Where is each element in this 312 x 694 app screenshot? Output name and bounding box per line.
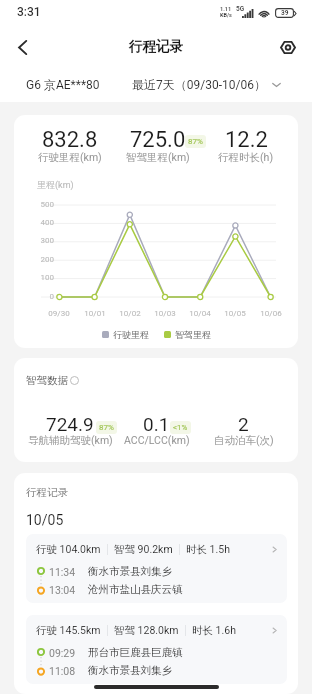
staticText: 10/05 bbox=[220, 309, 250, 318]
button[interactable]: 行驶 104.0km bbox=[26, 534, 287, 603]
button[interactable]: 行驶 145.5km bbox=[26, 615, 287, 684]
staticText: ACC/LCC(km) bbox=[124, 434, 190, 446]
staticText: 12.2 bbox=[225, 127, 268, 153]
staticText: 沧州市盐山县庆云镇 bbox=[88, 583, 183, 596]
staticText: 500 bbox=[34, 200, 54, 209]
staticText: 0.1 bbox=[143, 413, 170, 435]
button[interactable]: G6 京AE***80 bbox=[18, 71, 108, 98]
staticText: 自动泊车(次) bbox=[214, 434, 274, 447]
staticText: 87% bbox=[188, 137, 203, 146]
staticText: 智驾里程(km) bbox=[126, 151, 190, 164]
staticText: 时长 1.6h bbox=[192, 624, 236, 637]
staticText: 邢台市巨鹿县巨鹿镇 bbox=[88, 646, 183, 659]
staticText: 400 bbox=[34, 218, 54, 227]
staticText: 3:31 bbox=[17, 5, 41, 19]
staticText: 832.8 bbox=[42, 127, 98, 153]
staticText: 里程(km) bbox=[37, 179, 74, 190]
button[interactable]: Back bbox=[2, 27, 42, 67]
staticText: 1.11 bbox=[220, 6, 232, 12]
staticText: 行程记录 bbox=[129, 38, 183, 55]
staticText: <1% bbox=[173, 423, 188, 432]
staticText: 10/04 bbox=[185, 309, 215, 318]
staticText: 09/30 bbox=[44, 309, 74, 318]
staticText: 行驶里程(km) bbox=[38, 151, 102, 164]
staticText: 智驾 128.0km bbox=[114, 624, 179, 637]
staticText: 39 bbox=[281, 9, 289, 17]
staticText: 衡水市景县刘集乡 bbox=[88, 565, 172, 578]
staticText: 行驶 104.0km bbox=[36, 543, 101, 556]
staticText: 100 bbox=[34, 273, 54, 282]
staticText: 行程时长(h) bbox=[218, 151, 274, 164]
staticText: 0 bbox=[34, 292, 54, 301]
staticText: 行程记录 bbox=[26, 486, 68, 499]
staticText: 10/03 bbox=[150, 309, 180, 318]
staticText: 智驾数据 bbox=[26, 374, 68, 387]
button[interactable]: 最近7天（09/30-10/06） bbox=[124, 71, 290, 98]
staticText: 09:29 bbox=[49, 647, 82, 659]
staticText: 10/05 bbox=[26, 512, 64, 528]
staticText: 300 bbox=[34, 236, 54, 245]
staticText: 10/06 bbox=[256, 309, 286, 318]
staticText: 10/02 bbox=[115, 309, 145, 318]
staticText: 行驶 145.5km bbox=[36, 624, 101, 637]
staticText: 2 bbox=[238, 413, 249, 435]
staticText: 智驾里程 bbox=[175, 329, 211, 340]
staticText: 11:34 bbox=[49, 566, 82, 578]
staticText: 87% bbox=[99, 423, 114, 432]
staticText: 时长 1.5h bbox=[186, 543, 230, 556]
staticText: 11:08 bbox=[49, 665, 82, 677]
staticText: 724.9 bbox=[46, 413, 94, 435]
staticText: 智驾 90.2km bbox=[114, 543, 173, 556]
staticText: G6 京AE***80 bbox=[26, 77, 100, 92]
staticText: 13:04 bbox=[49, 584, 82, 596]
button[interactable]: Settings bbox=[268, 27, 308, 67]
staticText: 725.0 bbox=[130, 127, 186, 153]
staticText: 最近7天（09/30-10/06） bbox=[132, 77, 266, 92]
staticText: 导航辅助驾驶(km) bbox=[28, 434, 113, 447]
staticText: 10/01 bbox=[80, 309, 110, 318]
staticText: KB/s bbox=[220, 12, 232, 18]
staticText: 200 bbox=[34, 255, 54, 264]
staticText: 5G bbox=[236, 5, 245, 13]
staticText: 行驶里程 bbox=[113, 329, 149, 340]
staticText: 衡水市景县刘集乡 bbox=[88, 664, 172, 677]
